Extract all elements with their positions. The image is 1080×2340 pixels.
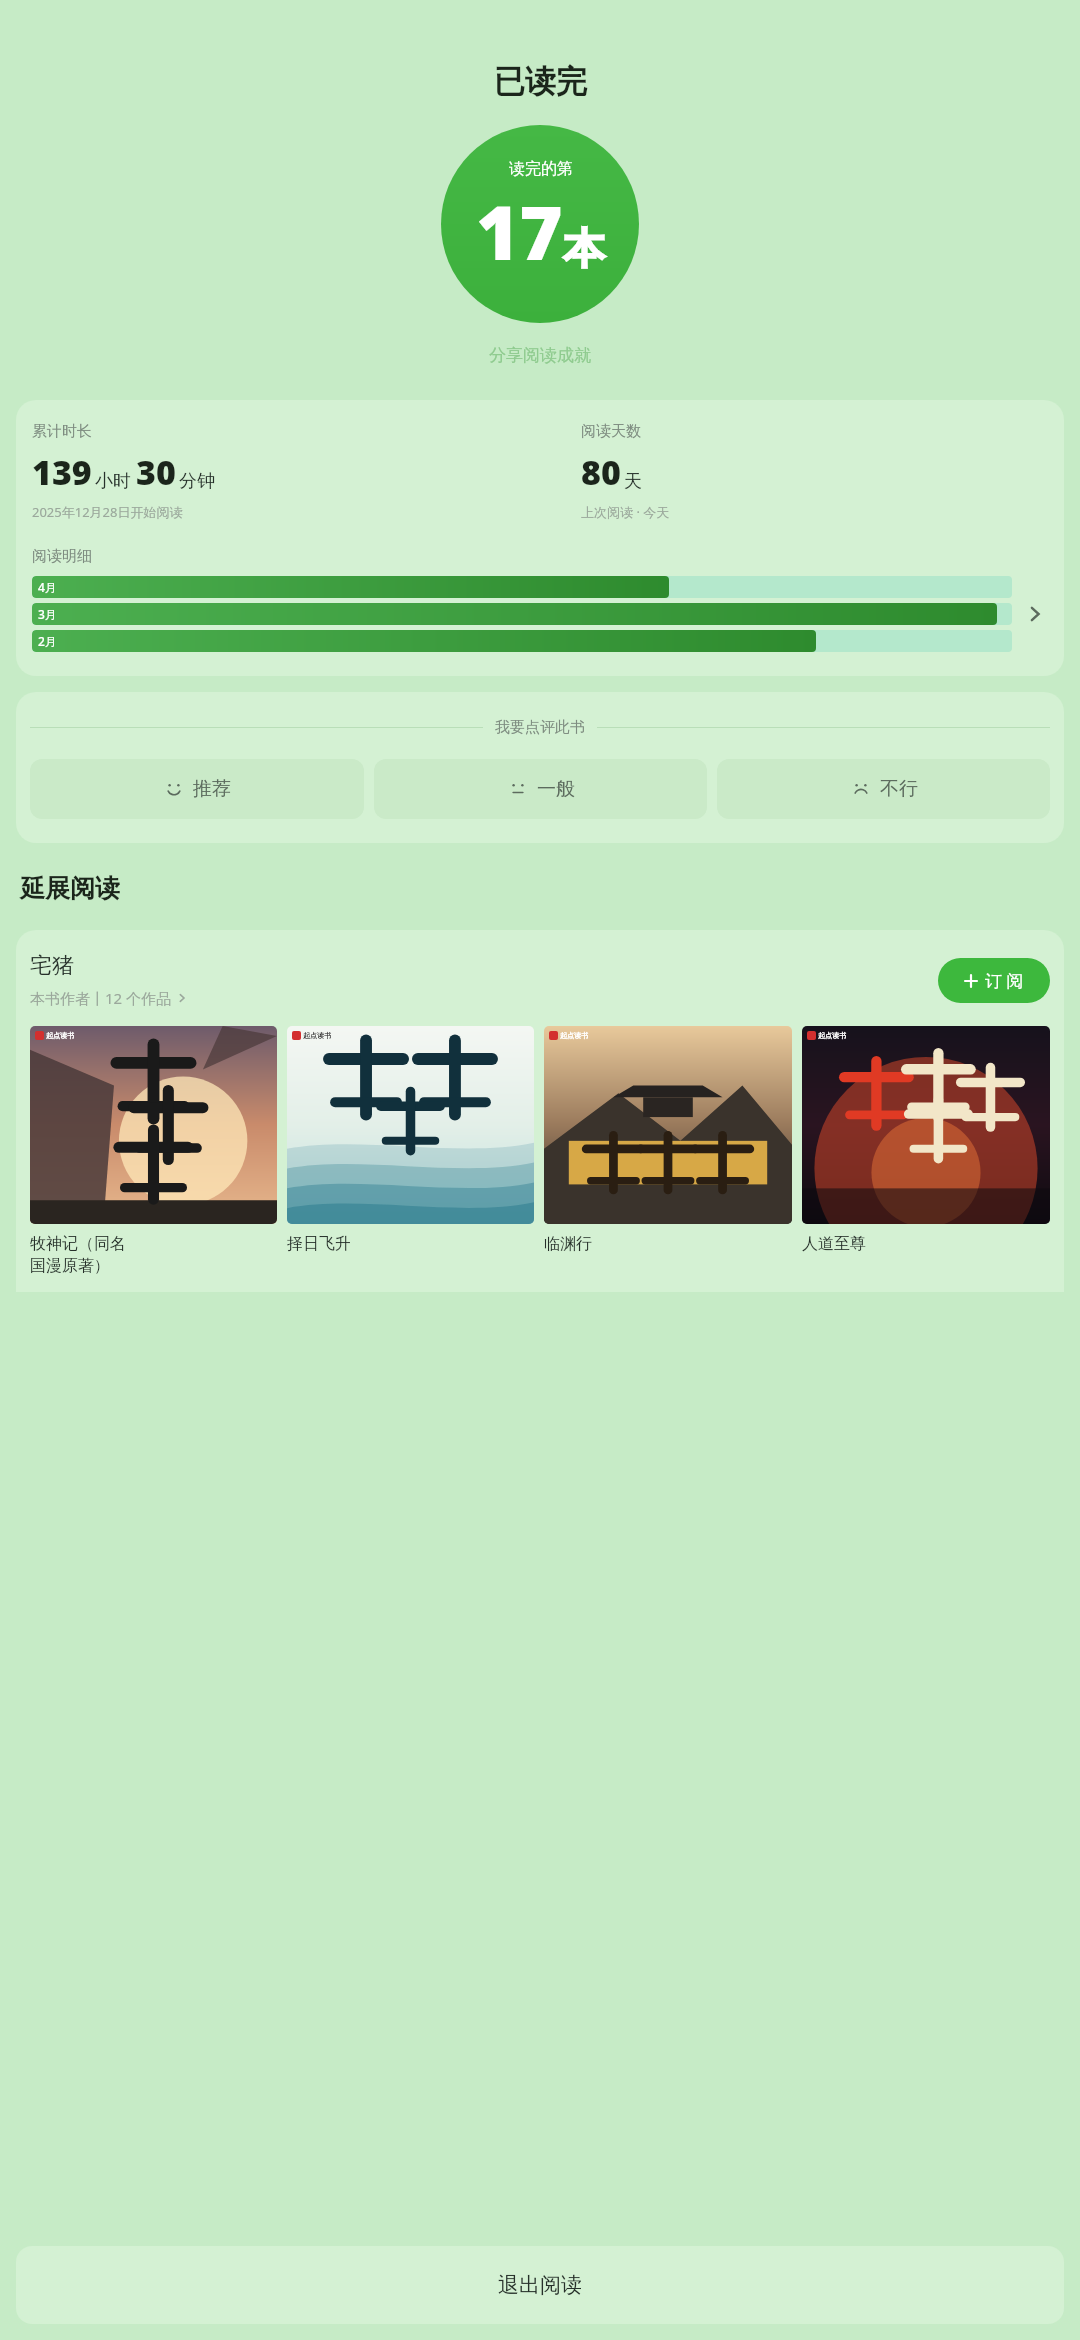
staticText: 起点读书 xyxy=(46,1031,74,1040)
staticText: 3月 xyxy=(38,606,57,622)
button[interactable]: 一般 xyxy=(374,759,707,819)
staticText: 累计时长 xyxy=(32,422,92,441)
button[interactable]: 退出阅读 xyxy=(16,2246,1064,2324)
staticText: 80 xyxy=(581,449,621,495)
button[interactable]: 起点读书 xyxy=(30,1026,277,1276)
staticText: 小时 xyxy=(95,470,131,493)
button[interactable]: 推荐 xyxy=(30,759,364,819)
staticText: 延展阅读 xyxy=(20,873,120,904)
staticText: 起点读书 xyxy=(560,1031,588,1040)
staticText: 一般 xyxy=(537,777,575,801)
staticText: 起点读书 xyxy=(818,1031,846,1040)
button[interactable]: 查看阅读明细 xyxy=(1022,601,1048,627)
button[interactable]: 起点读书 xyxy=(802,1026,1050,1254)
button[interactable]: 分享阅读成就 xyxy=(0,345,1080,366)
staticText: 139 xyxy=(32,449,92,495)
staticText: 2月 xyxy=(38,633,57,649)
staticText: 本书作者丨12 个作品 xyxy=(30,988,172,1008)
staticText: 分钟 xyxy=(179,470,215,493)
staticText: 阅读明细 xyxy=(32,547,92,566)
staticText: 订 阅 xyxy=(985,969,1024,992)
staticText: 起点读书 xyxy=(303,1031,331,1040)
staticText: 临渊行 xyxy=(544,1234,592,1254)
button[interactable]: 起点读书 xyxy=(287,1026,534,1254)
staticText: 择日飞升 xyxy=(287,1234,351,1254)
button[interactable]: 不行 xyxy=(717,759,1050,819)
staticText: 17 xyxy=(476,181,563,282)
button[interactable]: 读完的第 xyxy=(441,125,639,323)
button[interactable]: 起点读书 xyxy=(544,1026,792,1254)
staticText: 阅读天数 xyxy=(581,422,641,441)
staticText: 2025年12月28日开始阅读 xyxy=(32,503,183,521)
button[interactable]: 订 阅 xyxy=(938,958,1050,1003)
button[interactable]: 本书作者丨12 个作品 xyxy=(30,988,189,1008)
staticText: 推荐 xyxy=(193,777,231,801)
staticText: 读完的第 xyxy=(509,159,573,179)
staticText: 30 xyxy=(136,449,176,495)
staticText: 人道至尊 xyxy=(802,1234,866,1254)
staticText: 退出阅读 xyxy=(498,2272,582,2298)
staticText: 上次阅读 · 今天 xyxy=(581,503,670,521)
staticText: 4月 xyxy=(38,579,57,595)
staticText: 牧神记（同名 国漫原著） xyxy=(30,1234,126,1276)
staticText: 分享阅读成就 xyxy=(489,345,591,366)
staticText: 本 xyxy=(563,223,605,276)
staticText: 已读完 xyxy=(494,62,587,101)
staticText: 不行 xyxy=(880,777,918,801)
staticText: 我要点评此书 xyxy=(495,718,585,737)
staticText: 宅猪 xyxy=(30,952,74,980)
staticText: 天 xyxy=(624,470,642,493)
